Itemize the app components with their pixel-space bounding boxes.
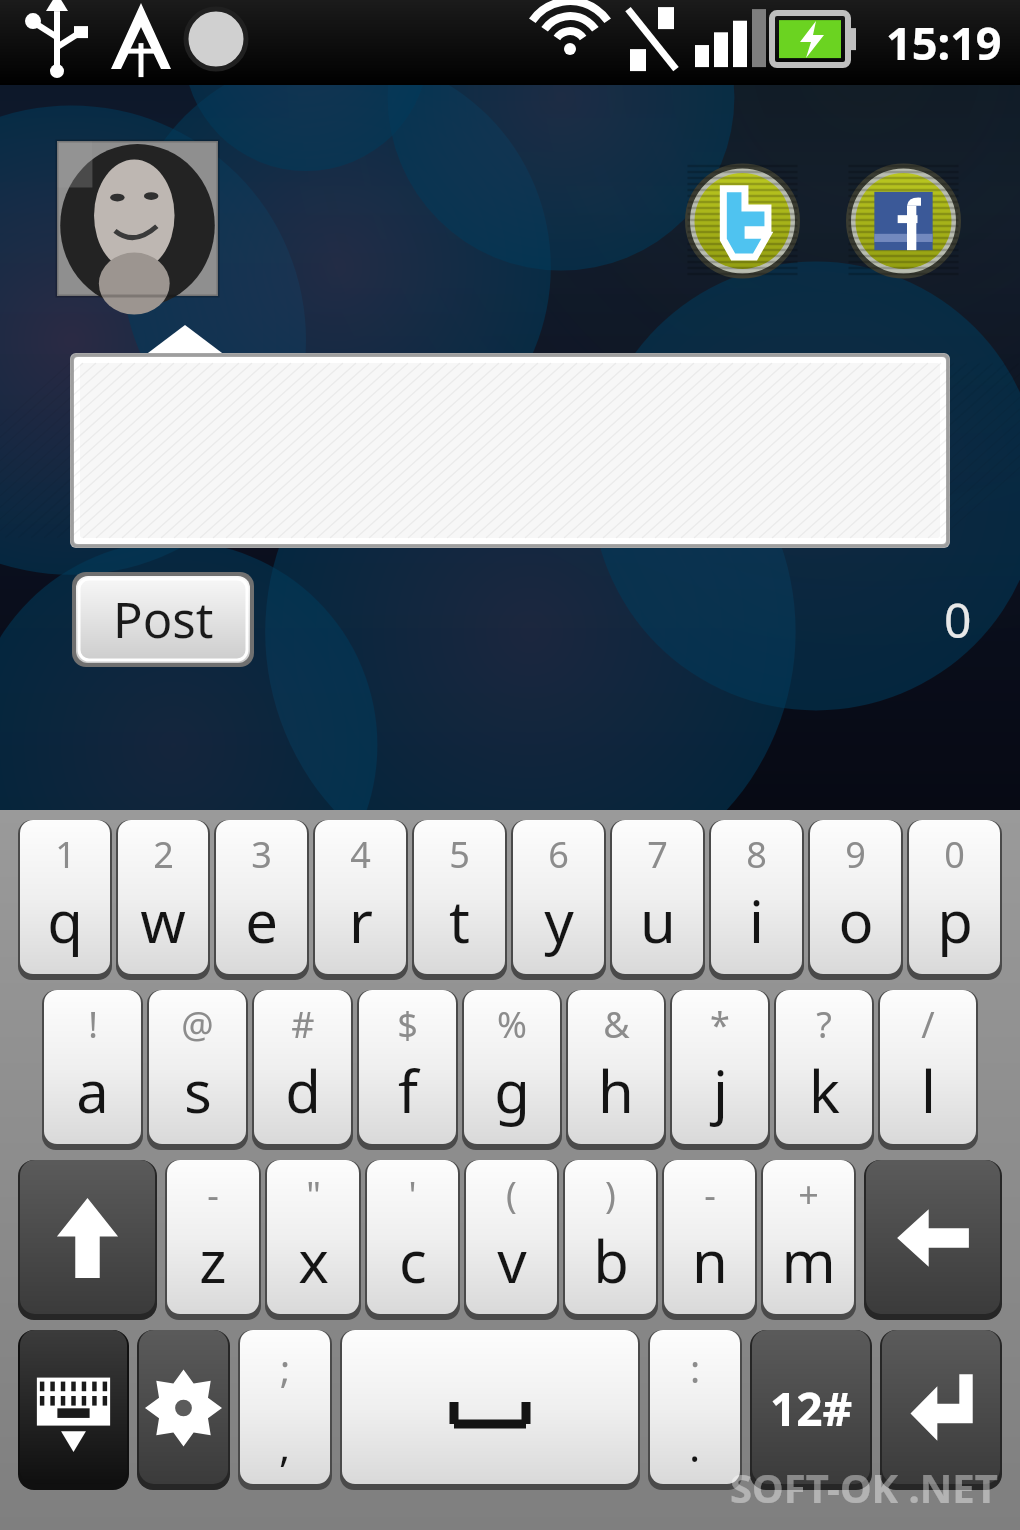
button[interactable]: Enter [880,1328,1002,1488]
staticText: w [140,881,186,960]
button[interactable]: : [648,1328,742,1488]
staticText: z [199,1221,227,1300]
staticText: 0 [944,587,972,652]
staticText: u [640,881,676,960]
staticText: g [494,1051,530,1130]
button[interactable]: - [165,1158,261,1318]
button[interactable]: 3 [214,818,309,978]
staticText: 3 [251,830,272,879]
button[interactable]: Twitter [676,162,809,280]
staticText: 5 [449,830,470,879]
staticText: + [798,1170,819,1219]
staticText: & [603,1000,630,1049]
button[interactable]: - [662,1158,757,1318]
staticText: 6 [548,830,569,879]
button[interactable]: 1 [18,818,112,978]
button[interactable]: Settings [137,1328,230,1488]
staticText: m [781,1221,836,1300]
staticText: l [921,1051,936,1130]
staticText: , [279,1417,291,1474]
staticText: i [749,881,764,960]
staticText: ( [506,1170,517,1219]
staticText: r [349,881,373,960]
staticText: $ [397,1000,418,1049]
button[interactable]: Hide keyboard [18,1328,129,1488]
staticText: 2 [153,830,174,879]
button[interactable] [70,353,950,548]
staticText: q [47,881,83,960]
button[interactable]: 2 [116,818,210,978]
staticText: n [692,1221,728,1300]
staticText: 8 [746,830,767,879]
staticText: 4 [350,830,371,879]
button[interactable]: 9 [808,818,903,978]
staticText: 7 [647,830,668,879]
button[interactable]: 6 [511,818,606,978]
staticText: . [689,1417,701,1474]
button[interactable]: / [878,988,978,1148]
staticText: 1 [55,830,76,879]
button[interactable]: 5 [412,818,507,978]
button[interactable]: ? [774,988,874,1148]
staticText: f [398,1051,418,1130]
staticText: SOFT-OK .NET [730,1460,998,1514]
staticText: j [713,1051,728,1130]
button[interactable]: * [670,988,770,1148]
button[interactable]: % [462,988,562,1148]
staticText: c [399,1221,427,1300]
button[interactable]: Post [72,572,254,667]
staticText: * [710,1000,730,1049]
button[interactable]: ' [365,1158,460,1318]
staticText: x [298,1221,329,1300]
staticText: y [544,881,574,960]
staticText: v [497,1221,527,1300]
button[interactable]: 8 [709,818,804,978]
button[interactable]: Profile picture [57,141,218,296]
button[interactable]: ; [238,1328,332,1488]
staticText: b [593,1221,629,1300]
staticText: s [184,1051,212,1130]
staticText: p [937,881,973,960]
staticText: ! [88,1000,98,1049]
button[interactable]: @ [147,988,248,1148]
staticText: ) [605,1170,616,1219]
button[interactable]: & [566,988,666,1148]
staticText: Post [113,586,214,653]
staticText: 15:19 [886,12,1002,73]
staticText: 0 [944,830,965,879]
staticText: a [76,1051,109,1130]
button[interactable]: Shift [18,1158,157,1318]
staticText: # [291,1000,315,1049]
staticText: 9 [845,830,866,879]
button[interactable]: ) [563,1158,658,1318]
button[interactable]: 12# [750,1328,872,1488]
staticText: " [306,1170,321,1219]
staticText: e [245,881,278,960]
button[interactable]: Backspace [864,1158,1002,1318]
staticText: ' [408,1170,417,1219]
staticText: k [809,1051,840,1130]
staticText: ; [280,1342,291,1394]
staticText: o [838,881,874,960]
button[interactable]: # [252,988,353,1148]
staticText: t [449,881,470,960]
staticText: h [598,1051,634,1130]
button[interactable]: + [761,1158,856,1318]
staticText: % [497,1000,527,1049]
button[interactable]: ! [42,988,143,1148]
staticText: / [921,1000,935,1049]
button[interactable]: 7 [610,818,705,978]
staticText: d [285,1051,321,1130]
button[interactable]: Facebook [837,162,970,280]
button[interactable]: 4 [313,818,408,978]
staticText: : [690,1342,701,1394]
staticText: - [207,1170,219,1219]
button[interactable]: $ [357,988,458,1148]
button[interactable]: Space [340,1328,640,1488]
staticText: ? [816,1000,832,1049]
button[interactable]: 0 [907,818,1002,978]
button[interactable]: ( [464,1158,559,1318]
staticText: @ [181,1000,214,1049]
button[interactable]: " [265,1158,361,1318]
staticText: 12# [770,1377,853,1440]
